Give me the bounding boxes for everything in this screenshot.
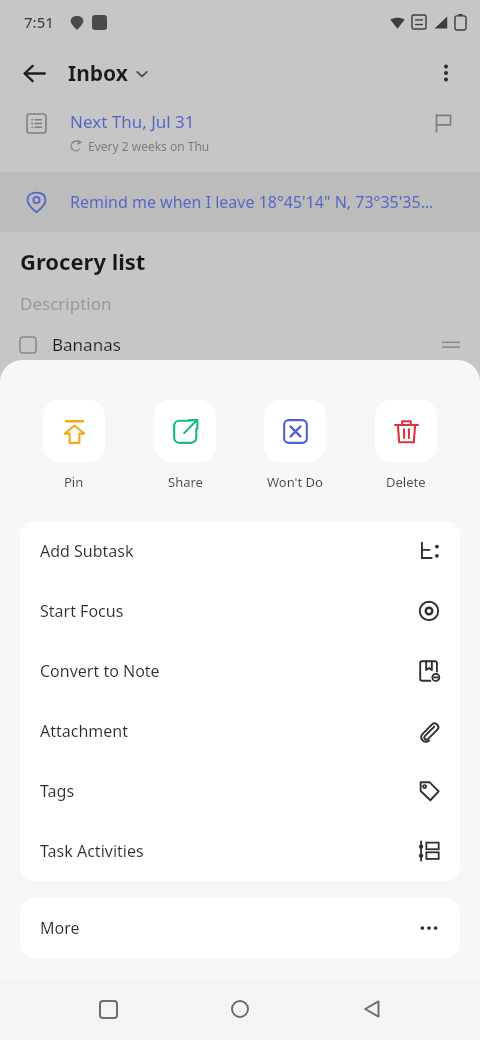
staticText: Attachment: [40, 720, 128, 742]
staticText: Every 2 weeks on Thu: [88, 138, 210, 154]
staticText: Won't Do: [267, 473, 323, 491]
button[interactable]: More: [20, 898, 460, 958]
staticText: Inbox: [68, 59, 128, 88]
button[interactable]: Start Focus: [20, 581, 460, 641]
button[interactable]: Home: [216, 985, 264, 1033]
staticText: Delete: [386, 473, 426, 491]
button[interactable]: Share: [138, 398, 232, 493]
button[interactable]: Won't Do: [248, 398, 342, 493]
button[interactable]: Add Subtask: [20, 521, 460, 581]
button[interactable]: More options: [424, 51, 468, 95]
button[interactable]: Back: [12, 51, 56, 95]
staticText: 7:51: [24, 12, 54, 32]
staticText: Add Subtask: [40, 540, 134, 562]
button[interactable]: Tags: [20, 761, 460, 821]
staticText: Start Focus: [40, 600, 124, 622]
staticText: Description: [20, 292, 112, 315]
button[interactable]: Recents: [84, 985, 132, 1033]
staticText: Remind me when I leave 18°45'14" N, 73°3…: [70, 191, 434, 213]
staticText: Next Thu, Jul 31: [70, 110, 195, 133]
staticText: Share: [168, 473, 203, 491]
button[interactable]: Attachment: [20, 701, 460, 761]
staticText: More: [40, 917, 80, 939]
button[interactable]: Convert to Note: [20, 641, 460, 701]
staticText: Convert to Note: [40, 660, 160, 682]
button[interactable]: Back: [348, 985, 396, 1033]
button[interactable]: Pin: [27, 398, 121, 493]
staticText: Grocery list: [20, 246, 146, 276]
staticText: Tags: [40, 780, 75, 802]
button[interactable]: Task Activities: [20, 821, 460, 881]
staticText: Pin: [64, 473, 84, 491]
staticText: Bananas: [52, 333, 121, 356]
staticText: Task Activities: [40, 840, 144, 862]
button[interactable]: Delete: [359, 398, 453, 493]
